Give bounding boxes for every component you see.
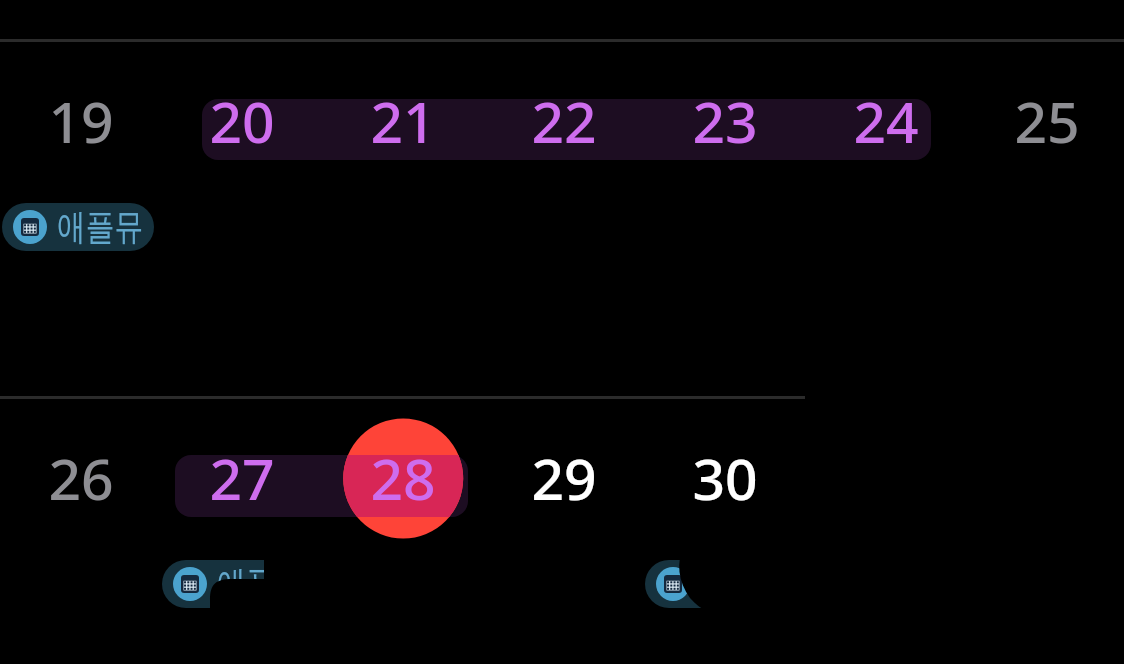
staticText: 20 [209,82,275,160]
button[interactable]: 30 [655,436,795,520]
button[interactable]: 27 [172,436,312,520]
button[interactable]: 20 [172,79,312,163]
button[interactable]: 21 [333,79,473,163]
button[interactable]: 24 [816,79,956,163]
staticText: 29 [531,439,597,517]
button[interactable]: 25 [977,79,1117,163]
staticText: 27 [209,439,275,517]
button[interactable]: Calendar event 애플뮤 [162,560,314,608]
staticText: 19 [48,82,114,160]
staticText: 23 [692,82,758,160]
button[interactable]: 22 [494,79,634,163]
staticText: 28 [370,439,436,517]
button[interactable]: 19 [11,79,151,163]
staticText: 애플뮤 [217,561,303,606]
button[interactable]: 23 [655,79,795,163]
staticText: 24 [853,82,919,160]
staticText: 애플뮤 [57,204,143,249]
button[interactable]: 29 [494,436,634,520]
staticText: 21 [370,82,436,160]
staticText: 25 [1014,82,1080,160]
button[interactable]: 26 [11,436,151,520]
staticText: 30 [692,439,758,517]
staticText: 22 [531,82,597,160]
button[interactable]: Calendar event 애플뮤 [2,203,154,251]
button[interactable]: Calendar event 애플뮤 [645,560,797,608]
staticText: 26 [48,439,114,517]
button[interactable]: 28 [333,436,473,520]
